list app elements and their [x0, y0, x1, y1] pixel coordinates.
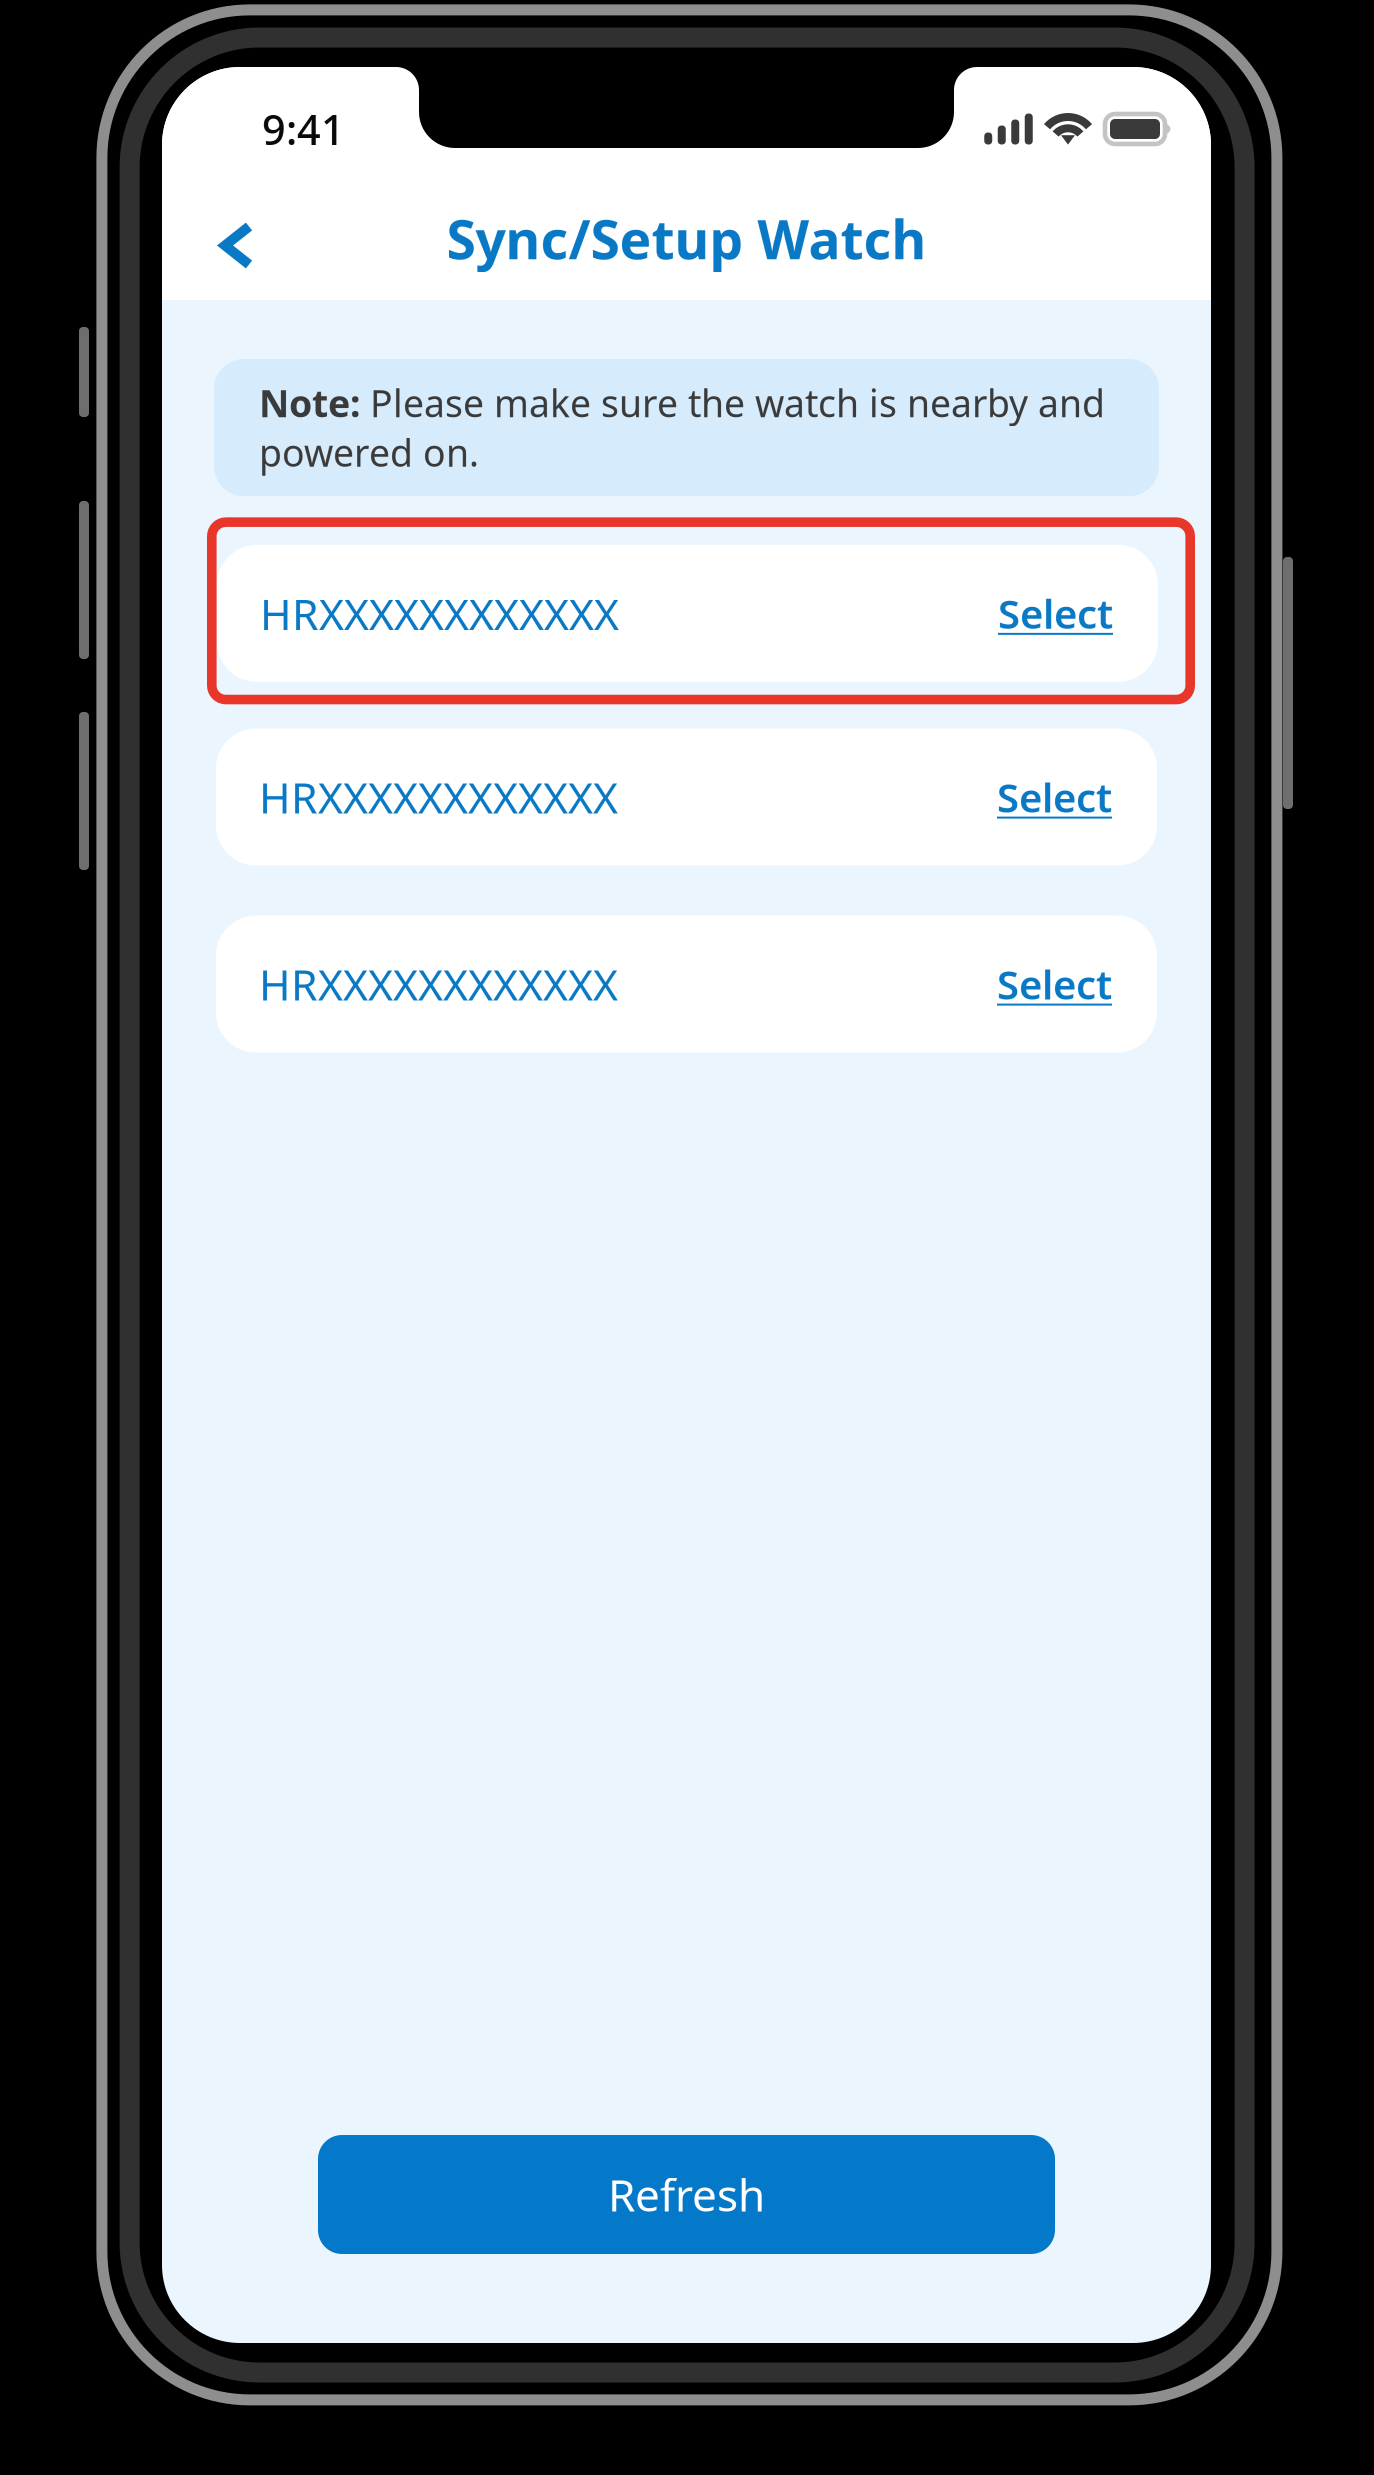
button[interactable]: Select: [998, 587, 1113, 640]
staticText: 9:41: [262, 102, 345, 156]
staticText: Sync/Setup Watch: [446, 203, 926, 274]
staticText: HRXXXXXXXXXXXX: [259, 956, 618, 1012]
staticText: Note: Please make sure the watch is near…: [259, 378, 1105, 477]
staticText: HRXXXXXXXXXXXX: [259, 769, 618, 825]
staticText: Select: [998, 587, 1113, 640]
button[interactable]: Refresh: [318, 2135, 1055, 2254]
staticText: Refresh: [608, 2165, 765, 2224]
button[interactable]: Back: [162, 193, 288, 297]
staticText: Select: [997, 770, 1112, 824]
button[interactable]: HRXXXXXXXXXXXX: [216, 916, 1157, 1053]
staticText: Select: [997, 957, 1112, 1011]
button[interactable]: HRXXXXXXXXXXXX: [216, 729, 1157, 866]
button[interactable]: Select: [997, 957, 1112, 1011]
staticText: HRXXXXXXXXXXXX: [260, 585, 619, 642]
button[interactable]: Select: [997, 770, 1112, 824]
button[interactable]: HRXXXXXXXXXXXX: [217, 545, 1158, 682]
